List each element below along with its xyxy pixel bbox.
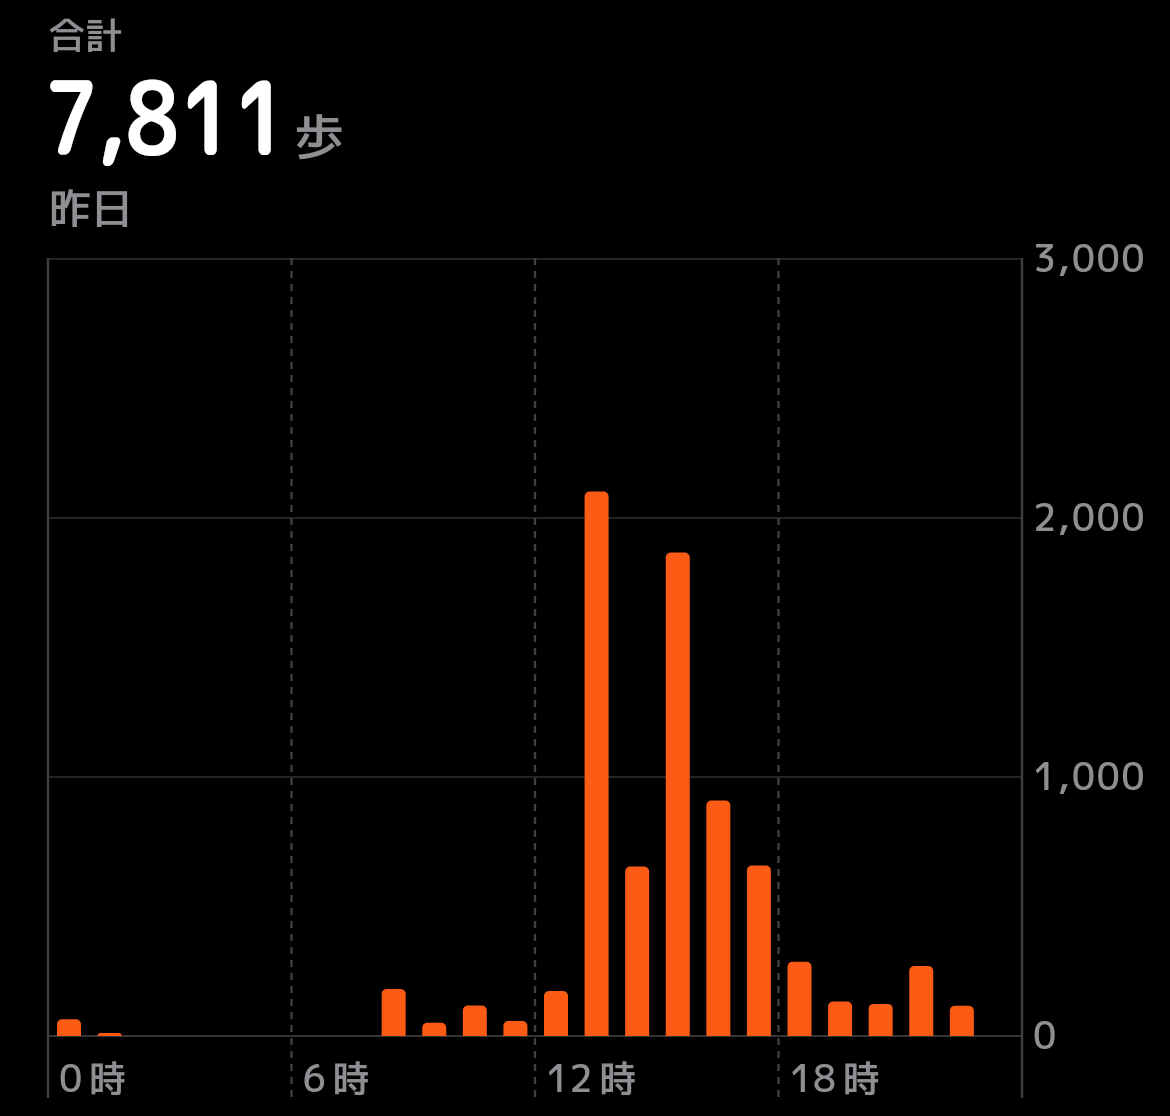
button[interactable]: Yesterday's hourly step count chart: [0, 0, 1170, 1116]
